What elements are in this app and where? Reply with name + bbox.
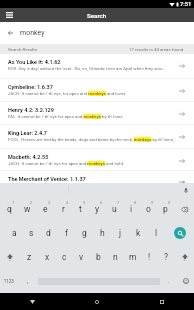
staticText: . [168, 277, 170, 285]
staticText: FAL. It cannot be i' th' eye for apes an… [8, 114, 123, 119]
button[interactable]: v [73, 245, 90, 269]
staticText: a [12, 228, 17, 238]
button[interactable]: Macbeth: 4.2.55 [0, 149, 194, 170]
button[interactable]: l [147, 221, 165, 245]
button[interactable]: u [106, 197, 123, 221]
staticText: m [129, 252, 137, 262]
staticText: Search [87, 12, 107, 19]
button[interactable]: c [56, 245, 73, 269]
button[interactable]: h [93, 221, 111, 245]
button[interactable]: Shift [175, 245, 194, 269]
staticText: Henry 4.2: 3.2.129 [8, 107, 54, 113]
button[interactable]: Search [165, 221, 194, 245]
button[interactable]: Home [64, 293, 129, 310]
button[interactable]: d [40, 221, 57, 245]
staticText: z [27, 252, 32, 262]
button[interactable]: b [90, 245, 107, 269]
staticText: b [96, 252, 101, 262]
button[interactable]: g [75, 221, 93, 245]
button[interactable]: King Lear: 2.4.7 [0, 125, 194, 148]
button[interactable]: x [38, 245, 56, 269]
button[interactable]: , [18, 269, 38, 293]
button[interactable]: Recent apps [129, 293, 194, 310]
staticText: p [163, 204, 168, 214]
staticText: , [27, 277, 29, 285]
button[interactable]: The Merchant of Venice: 1.1.37 [0, 171, 194, 183]
staticText: 1 [12, 200, 15, 204]
staticText: v [79, 252, 84, 262]
staticText: t [79, 204, 82, 214]
staticText: 4 [66, 200, 69, 204]
staticText: w [24, 204, 31, 214]
button[interactable]: e [36, 197, 54, 221]
button[interactable]: ?123 [0, 269, 18, 293]
button[interactable]: Voice input [177, 183, 194, 197]
staticText: JACH. It cannot be i' th' eye, for apes … [8, 91, 126, 96]
staticText: 6 [100, 200, 103, 204]
button[interactable]: q [0, 197, 18, 221]
staticText: o [146, 204, 151, 214]
button[interactable]: t [72, 197, 89, 221]
staticText: l [155, 228, 158, 238]
button[interactable]: a [6, 221, 23, 245]
staticText: 0 [168, 200, 171, 204]
staticText: monkey [20, 29, 45, 37]
button[interactable]: Henry 4.2: 3.2.129 [0, 102, 194, 124]
staticText: 2 [30, 200, 33, 204]
button[interactable]: Delete [174, 197, 194, 221]
staticText: The Merchant of Venice: 1.1.37 [8, 176, 86, 182]
button[interactable]: Space [38, 269, 160, 293]
button[interactable]: f [57, 221, 75, 245]
button[interactable]: w [18, 197, 36, 221]
staticText: 3 [48, 200, 51, 204]
staticText: n [113, 252, 118, 262]
staticText: 7 [117, 200, 120, 204]
button[interactable]: Shift [0, 245, 20, 269]
staticText: ! [148, 252, 151, 262]
staticText: FOOL. Horses are tied by the heads, dogs… [8, 137, 174, 142]
button[interactable]: o [140, 197, 157, 221]
staticText: ROS. Say 'a day' without the 'ever'. No,… [8, 66, 166, 71]
button[interactable]: As You Like It: 4.1.62 [0, 54, 194, 78]
button[interactable]: Emoji [177, 269, 194, 293]
button[interactable]: r [54, 197, 72, 221]
button[interactable]: Open navigation drawer [0, 8, 19, 22]
button[interactable]: i [123, 197, 140, 221]
staticText: r [62, 204, 65, 214]
staticText: s [29, 228, 34, 238]
staticText: As You Like It: 4.1.62 [8, 59, 61, 65]
button[interactable]: n [107, 245, 124, 269]
button[interactable]: z [20, 245, 38, 269]
button[interactable]: Cymbeline: 1.6.37 [0, 79, 194, 101]
button[interactable]: k [129, 221, 147, 245]
staticText: 9 [151, 200, 154, 204]
staticText: ? [164, 252, 169, 262]
staticText: k [136, 228, 141, 238]
staticText: h [100, 228, 105, 238]
staticText: 17 results in 44 areas found [129, 47, 184, 52]
staticText: Macbeth: 4.2.55 [8, 154, 49, 160]
staticText: 8 [134, 200, 137, 204]
button[interactable]: ? [158, 245, 175, 269]
staticText: Cymbeline: 1.6.37 [8, 84, 53, 90]
button[interactable]: Back [0, 22, 21, 44]
button[interactable]: y [89, 197, 106, 221]
staticText: 7:51 [180, 1, 192, 8]
button[interactable]: s [23, 221, 40, 245]
staticText: JACH. It cannot be i' th' eye for apes a… [8, 161, 123, 166]
button[interactable]: m [124, 245, 141, 269]
staticText: g [82, 228, 87, 238]
button[interactable]: j [111, 221, 129, 245]
staticText: King Lear: 2.4.7 [8, 130, 48, 136]
staticText: u [112, 204, 117, 214]
staticText: y [95, 204, 100, 214]
staticText: j [119, 228, 122, 238]
button[interactable]: ! [141, 245, 158, 269]
staticText: 5 [83, 200, 86, 204]
staticText: c [62, 252, 67, 262]
staticText: q [7, 204, 12, 214]
button[interactable]: p [157, 197, 174, 221]
button[interactable]: Back [0, 293, 64, 310]
staticText: f [65, 228, 68, 238]
